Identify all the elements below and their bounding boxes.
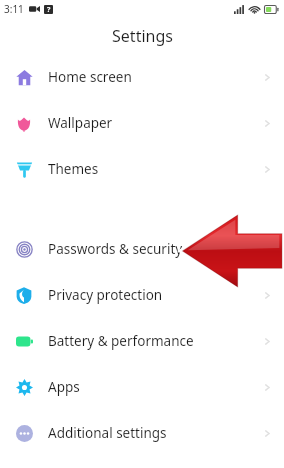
staticText: Themes bbox=[48, 160, 262, 178]
staticText: Settings bbox=[112, 25, 173, 47]
staticText: ? bbox=[47, 5, 51, 14]
staticText: Privacy protection bbox=[48, 286, 262, 304]
staticText: Additional settings bbox=[48, 424, 262, 442]
button[interactable]: Battery & performance bbox=[0, 318, 284, 364]
button[interactable]: Apps bbox=[0, 364, 284, 410]
button[interactable]: Themes bbox=[0, 146, 284, 192]
button[interactable]: Wallpaper bbox=[0, 100, 284, 146]
staticText: Apps bbox=[48, 378, 262, 396]
button[interactable]: Home screen bbox=[0, 54, 284, 100]
staticText: Home screen bbox=[48, 68, 262, 86]
staticText: Passwords & security bbox=[48, 240, 262, 258]
staticText: Wallpaper bbox=[48, 114, 262, 132]
button[interactable]: Additional settings bbox=[0, 410, 284, 456]
staticText: Battery & performance bbox=[48, 332, 262, 350]
button[interactable]: Passwords & security bbox=[0, 226, 284, 272]
staticText: 3:11 bbox=[4, 2, 24, 16]
button[interactable]: Privacy protection bbox=[0, 272, 284, 318]
